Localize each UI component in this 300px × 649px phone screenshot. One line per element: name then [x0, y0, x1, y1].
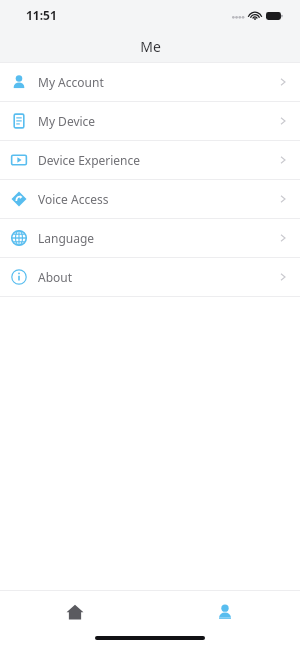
staticText: 11:51: [26, 7, 57, 23]
button[interactable]: Me: [150, 591, 300, 633]
button[interactable]: My Device: [0, 102, 300, 140]
staticText: My Device: [38, 113, 96, 129]
button[interactable]: Device Experience: [0, 141, 300, 179]
staticText: Me: [140, 37, 161, 56]
button[interactable]: About: [0, 258, 300, 296]
staticText: Language: [38, 230, 95, 246]
staticText: Voice Access: [38, 191, 109, 207]
staticText: About: [38, 269, 73, 285]
staticText: Device Experience: [38, 152, 141, 168]
button[interactable]: Language: [0, 219, 300, 257]
button[interactable]: My Account: [0, 63, 300, 101]
button[interactable]: Home: [0, 591, 150, 633]
button[interactable]: Voice Access: [0, 180, 300, 218]
staticText: My Account: [38, 74, 104, 90]
